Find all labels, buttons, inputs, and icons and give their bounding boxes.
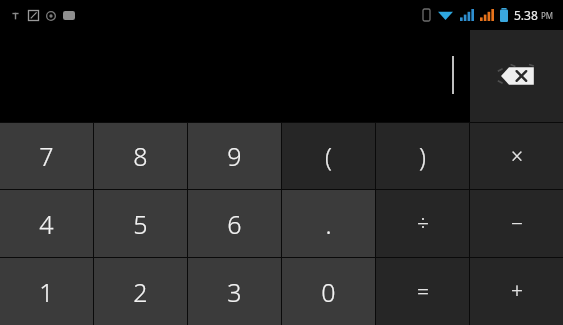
- button[interactable]: 4: [0, 190, 93, 257]
- staticText: =: [417, 277, 429, 306]
- staticText: PM: [541, 10, 554, 21]
- button[interactable]: 9: [188, 123, 281, 189]
- staticText: ×: [511, 142, 523, 171]
- staticText: ): [419, 139, 426, 173]
- button[interactable]: 3: [188, 258, 281, 325]
- staticText: 8: [133, 139, 148, 173]
- button[interactable]: 1: [0, 258, 93, 325]
- button[interactable]: 0: [282, 258, 375, 325]
- staticText: −: [511, 209, 523, 238]
- button[interactable]: 2: [94, 258, 187, 325]
- button[interactable]: −: [470, 190, 563, 257]
- staticText: 6: [227, 207, 242, 241]
- button[interactable]: ): [376, 123, 469, 189]
- staticText: 1: [39, 275, 54, 309]
- staticText: 2: [133, 275, 148, 309]
- staticText: 7: [39, 139, 54, 173]
- button[interactable]: .: [282, 190, 375, 257]
- staticText: .: [325, 207, 332, 241]
- staticText: ÷: [417, 209, 429, 238]
- button[interactable]: Delete: [470, 30, 563, 122]
- button[interactable]: (: [282, 123, 375, 189]
- button[interactable]: ÷: [376, 190, 469, 257]
- staticText: +: [511, 277, 523, 306]
- staticText: (: [325, 139, 332, 173]
- staticText: 3: [227, 275, 242, 309]
- staticText: 4: [39, 207, 54, 241]
- button[interactable]: =: [376, 258, 469, 325]
- button[interactable]: 7: [0, 123, 93, 189]
- staticText: 9: [227, 139, 242, 173]
- button[interactable]: ×: [470, 123, 563, 189]
- button[interactable]: +: [470, 258, 563, 325]
- button[interactable]: 5: [94, 190, 187, 257]
- button[interactable]: 8: [94, 123, 187, 189]
- staticText: 5.38: [514, 7, 538, 23]
- staticText: 0: [321, 275, 336, 309]
- button[interactable]: 6: [188, 190, 281, 257]
- staticText: 5: [133, 207, 148, 241]
